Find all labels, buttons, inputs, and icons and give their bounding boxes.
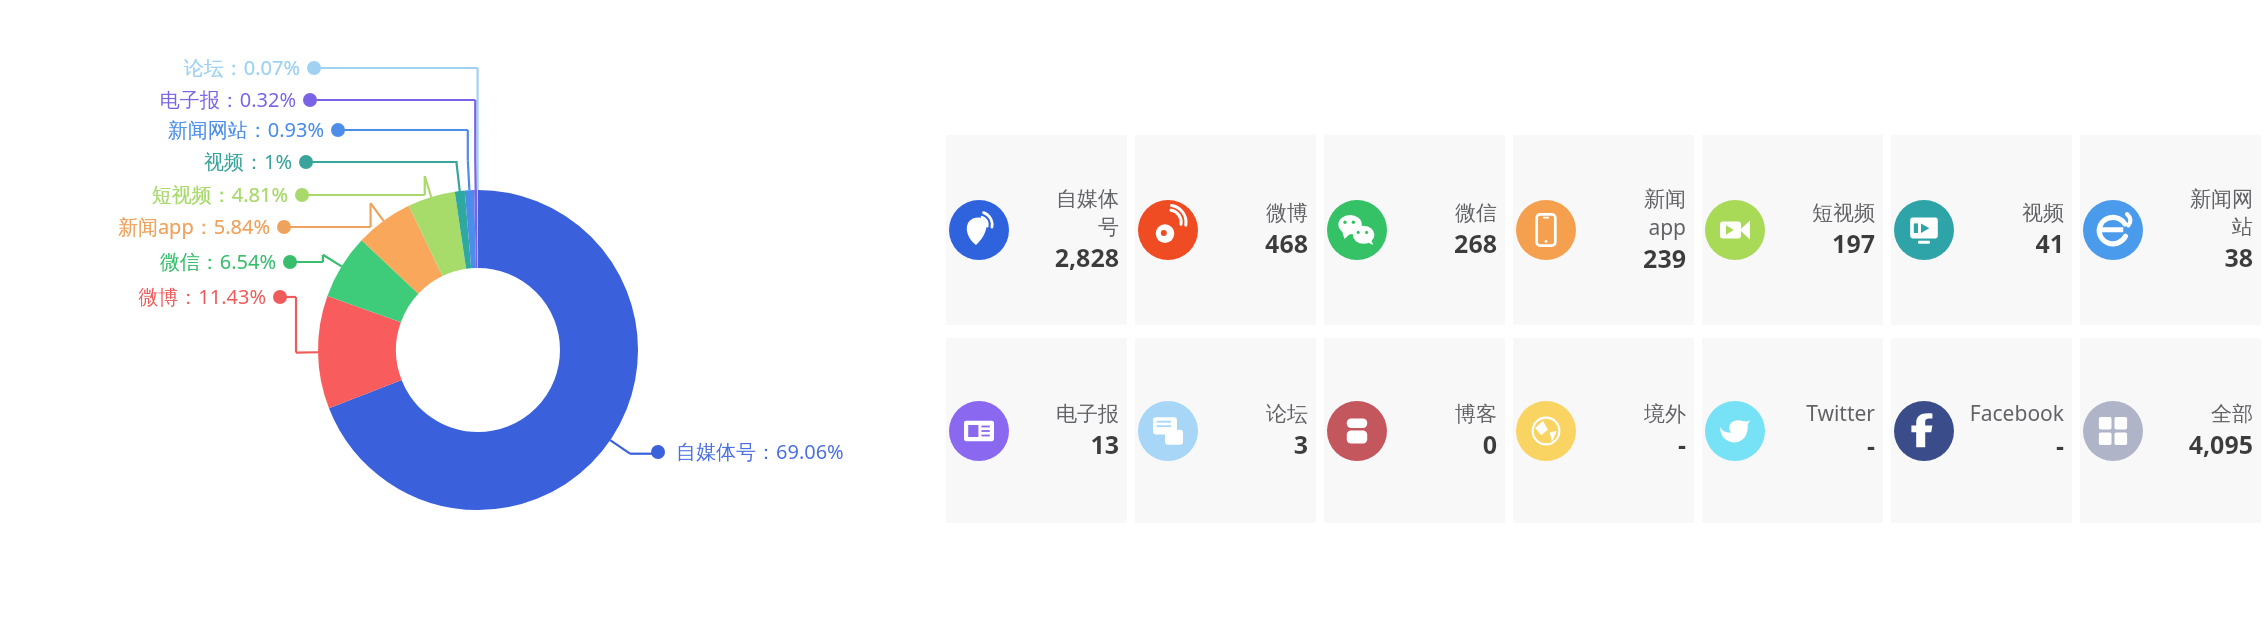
staticText: 新闻网站：0.93% <box>0 116 324 143</box>
button[interactable]: 短视频 <box>1702 135 1883 325</box>
staticText: 197 <box>1765 226 1875 260</box>
button[interactable]: 博客 <box>1324 338 1505 523</box>
button[interactable]: 微信 <box>1324 135 1505 325</box>
staticText: - <box>1954 428 2064 462</box>
button[interactable]: 自媒体号 <box>946 135 1127 325</box>
other: Facebook <box>1894 401 1954 461</box>
staticText: 论坛：0.07% <box>0 54 300 81</box>
staticText: 微信 <box>1387 200 1497 226</box>
staticText: 2,828 <box>1009 240 1119 274</box>
other: Twitter <box>1705 401 1765 461</box>
button[interactable]: 论坛 <box>1135 338 1316 523</box>
other: 微博 <box>1138 200 1198 260</box>
staticText: 自媒体号：69.06% <box>676 438 844 465</box>
button[interactable]: 视频 <box>1891 135 2072 325</box>
button[interactable]: 电子报 <box>946 338 1127 523</box>
staticText: 视频 <box>1954 200 2064 226</box>
other: 论坛 <box>1138 401 1198 461</box>
staticText: 短视频 <box>1765 200 1875 226</box>
staticText: 电子报 <box>1009 401 1119 427</box>
staticText: 论坛 <box>1198 401 1308 427</box>
staticText: 4,095 <box>2143 427 2253 461</box>
staticText: 博客 <box>1387 401 1497 427</box>
staticText: 短视频：4.81% <box>0 181 288 208</box>
staticText: 0 <box>1387 427 1497 461</box>
button[interactable]: 全部 <box>2080 338 2261 523</box>
other: 视频 <box>1894 200 1954 260</box>
other: 全部 <box>2083 401 2143 461</box>
staticText: 境外 <box>1576 401 1686 427</box>
staticText: 视频：1% <box>0 148 292 175</box>
button[interactable]: 微博 <box>1135 135 1316 325</box>
other: 微信 <box>1327 200 1387 260</box>
staticText: 微信：6.54% <box>0 248 276 275</box>
staticText: - <box>1576 427 1686 461</box>
button[interactable]: 新闻网站 <box>2080 135 2261 325</box>
staticText: 微博：11.43% <box>0 283 266 310</box>
staticText: 新闻 app <box>1576 186 1686 241</box>
staticText: 全部 <box>2143 401 2253 427</box>
staticText: 268 <box>1387 226 1497 260</box>
button[interactable]: 境外 <box>1513 338 1694 523</box>
staticText: Twitter <box>1765 399 1875 428</box>
staticText: Facebook <box>1954 399 2064 428</box>
staticText: 新闻网 站 <box>2143 186 2253 240</box>
other: 博客 <box>1327 401 1387 461</box>
staticText: 电子报：0.32% <box>0 86 296 113</box>
staticText: 微博 <box>1198 200 1308 226</box>
staticText: 41 <box>1954 226 2064 260</box>
other: 短视频 <box>1705 200 1765 260</box>
other: 新闻app <box>1516 200 1576 260</box>
button[interactable]: Twitter <box>1702 338 1883 523</box>
other: 新闻网站 <box>2083 200 2143 260</box>
staticText: 3 <box>1198 427 1308 461</box>
staticText: 468 <box>1198 226 1308 260</box>
other: 境外 <box>1516 401 1576 461</box>
staticText: 38 <box>2143 240 2253 274</box>
other: 电子报 <box>949 401 1009 461</box>
staticText: - <box>1765 428 1875 462</box>
other: 自媒体号 <box>949 200 1009 260</box>
staticText: 自媒体 号 <box>1009 186 1119 240</box>
button[interactable]: Facebook <box>1891 338 2072 523</box>
staticText: 13 <box>1009 427 1119 461</box>
staticText: 239 <box>1576 241 1686 275</box>
staticText: 新闻app：5.84% <box>0 213 270 240</box>
button[interactable]: 新闻app <box>1513 135 1694 325</box>
